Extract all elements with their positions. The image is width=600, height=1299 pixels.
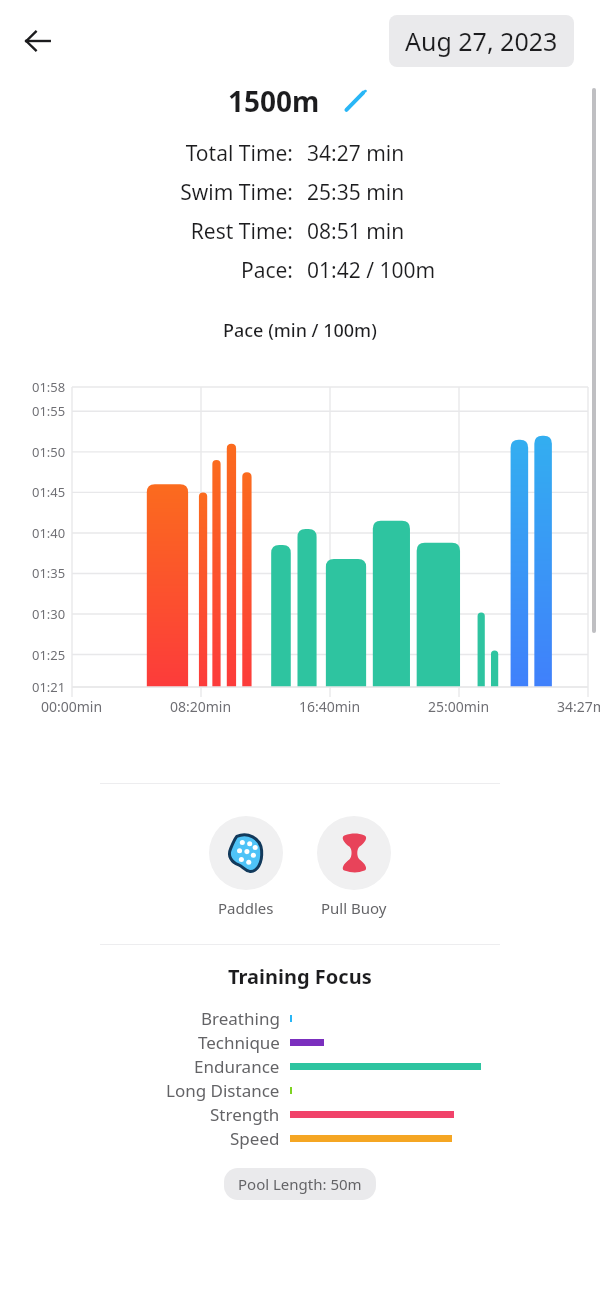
staticText: 16:40min [299, 697, 361, 716]
staticText: 01:21 [32, 678, 66, 696]
staticText: 00:00min [41, 697, 103, 716]
staticText: Strength [210, 1103, 280, 1126]
button[interactable]: Paddles [205, 812, 287, 922]
staticText: 01:58 [32, 378, 66, 396]
staticText: Pace: [240, 256, 293, 285]
staticText: 25:00min [428, 697, 490, 716]
staticText: Rest Time: [190, 217, 293, 246]
staticText: 01:30 [32, 605, 66, 623]
staticText: 01:42 / 100m [307, 256, 436, 285]
staticText: 01:35 [32, 564, 66, 582]
staticText: Paddles [218, 898, 274, 918]
button[interactable]: Edit [338, 84, 372, 118]
staticText: Training Focus [228, 963, 372, 990]
staticText: Breathing [201, 1007, 280, 1030]
staticText: 1500m [228, 82, 320, 120]
button[interactable]: Pool Length: 50m [224, 1168, 376, 1200]
staticText: 01:50 [32, 443, 66, 461]
staticText: 01:40 [32, 524, 66, 542]
staticText: 34:27 min [307, 139, 405, 168]
staticText: Swim Time: [180, 178, 293, 207]
staticText: Pace (min / 100m) [223, 318, 377, 343]
staticText: Endurance [194, 1055, 280, 1078]
staticText: 25:35 min [307, 178, 405, 207]
staticText: Aug 27, 2023 [405, 24, 558, 58]
staticText: 01:45 [32, 483, 66, 501]
staticText: Pull Buoy [321, 898, 387, 918]
staticText: Technique [198, 1031, 280, 1054]
staticText: 01:25 [32, 646, 66, 664]
staticText: 08:51 min [307, 217, 405, 246]
staticText: 08:20min [170, 697, 232, 716]
staticText: 34:27min [557, 697, 600, 716]
button[interactable]: Back [14, 17, 62, 65]
staticText: 01:55 [32, 402, 66, 420]
staticText: Pool Length: 50m [238, 1174, 362, 1194]
staticText: Long Distance [166, 1079, 280, 1102]
staticText: Total Time: [185, 139, 293, 168]
button[interactable]: Aug 27, 2023 [389, 15, 574, 67]
button[interactable]: Pull Buoy [313, 812, 395, 922]
staticText: Speed [230, 1127, 280, 1150]
